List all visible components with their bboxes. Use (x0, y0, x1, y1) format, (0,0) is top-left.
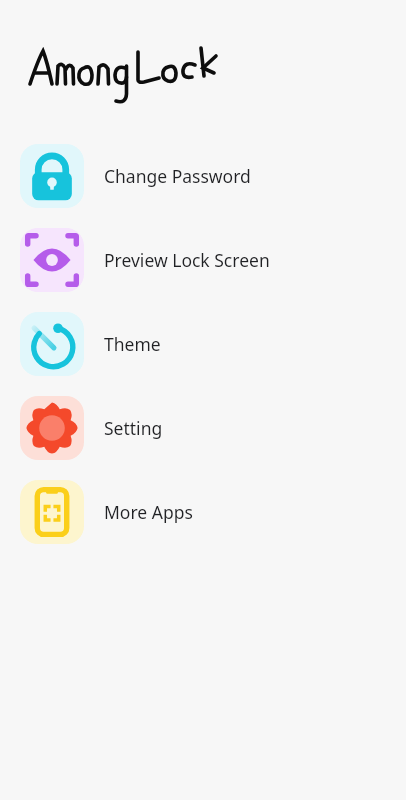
staticText: More Apps (104, 500, 193, 524)
button[interactable]: Theme (0, 302, 406, 386)
button[interactable]: More Apps (0, 470, 406, 554)
staticText: Theme (104, 332, 161, 356)
button[interactable]: Setting (0, 386, 406, 470)
staticText: Preview Lock Screen (104, 248, 270, 272)
other: AmongLock (28, 42, 228, 102)
staticText: Change Password (104, 164, 251, 188)
staticText: Setting (104, 416, 163, 440)
button[interactable]: Preview Lock Screen (0, 218, 406, 302)
button[interactable]: Change Password (0, 134, 406, 218)
